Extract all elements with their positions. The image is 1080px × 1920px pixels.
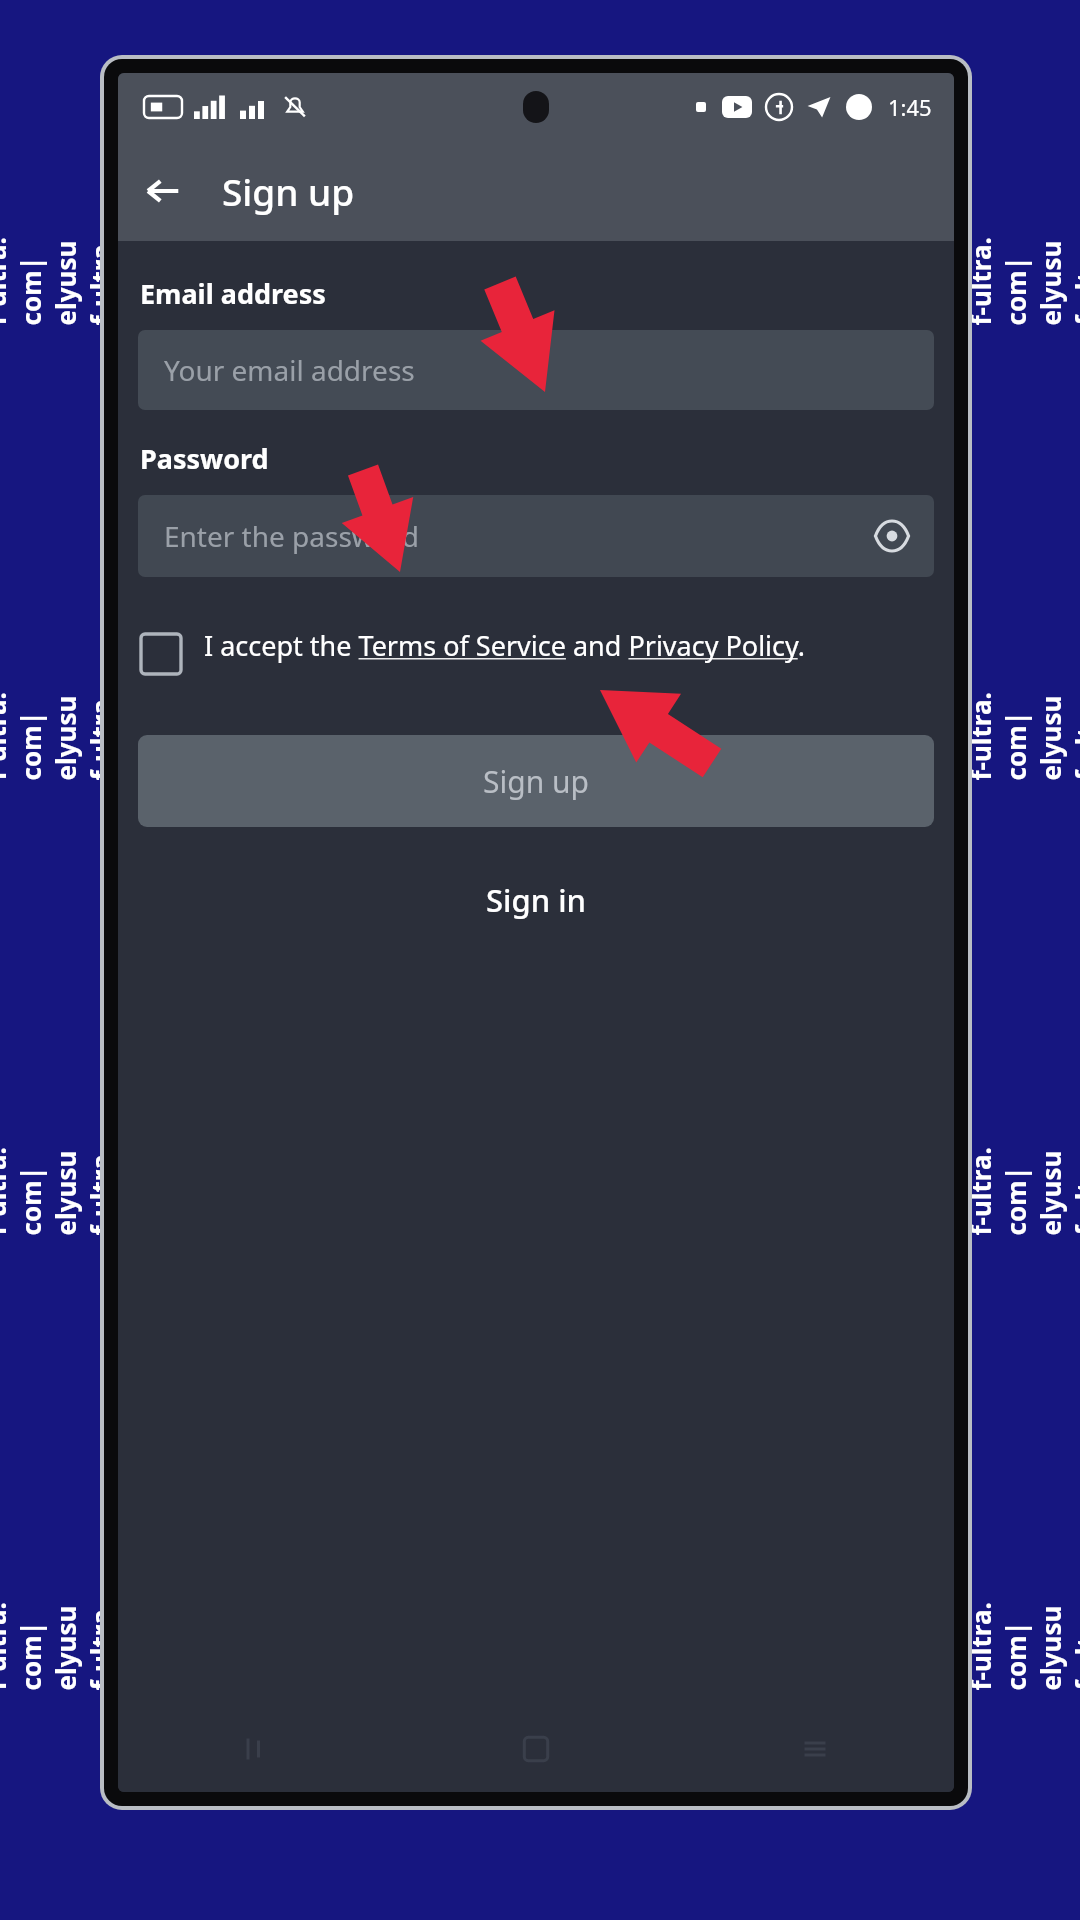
staticText: elyusuf-ultra.com| elyusuf-ultra.com| bbox=[927, 1140, 1080, 1235]
staticText: Enter the password bbox=[164, 517, 420, 555]
staticText: Sign up bbox=[483, 761, 589, 802]
staticText: Sign up bbox=[222, 166, 355, 216]
staticText: elyusuf-ultra.com| elyusuf-ultra.com| bbox=[0, 1140, 152, 1235]
staticText: Email address bbox=[140, 275, 326, 312]
staticText: 1:45 bbox=[888, 92, 932, 122]
staticText: I accept the Terms of Service and Privac… bbox=[204, 627, 805, 664]
staticText: elyusuf-ultra.com| elyusuf-ultra.com| bbox=[927, 685, 1080, 780]
staticText: elyusuf-ultra.com| elyusuf-ultra.com| bbox=[927, 1595, 1080, 1690]
staticText: Your email address bbox=[164, 351, 415, 389]
staticText: elyusuf-ultra.com| elyusuf-ultra.com| bbox=[0, 1595, 152, 1690]
button[interactable]: Sign up bbox=[138, 735, 934, 827]
staticText: elyusuf-ultra.com| elyusuf-ultra.com| bbox=[0, 230, 152, 325]
staticText: elyusuf-ultra.com| elyusuf-ultra.com| bbox=[927, 230, 1080, 325]
button[interactable]: I accept the Terms of Service and Privac… bbox=[118, 623, 954, 679]
staticText: Password bbox=[140, 440, 269, 477]
button[interactable]: Show password bbox=[864, 508, 920, 564]
button[interactable]: Your email address bbox=[138, 330, 934, 410]
button[interactable]: Enter the password bbox=[138, 495, 934, 577]
staticText: Sign in bbox=[486, 879, 586, 921]
button[interactable]: Back bbox=[132, 160, 194, 222]
staticText: elyusuf-ultra.com| elyusuf-ultra.com| bbox=[0, 685, 152, 780]
button[interactable]: Sign in bbox=[460, 869, 612, 931]
